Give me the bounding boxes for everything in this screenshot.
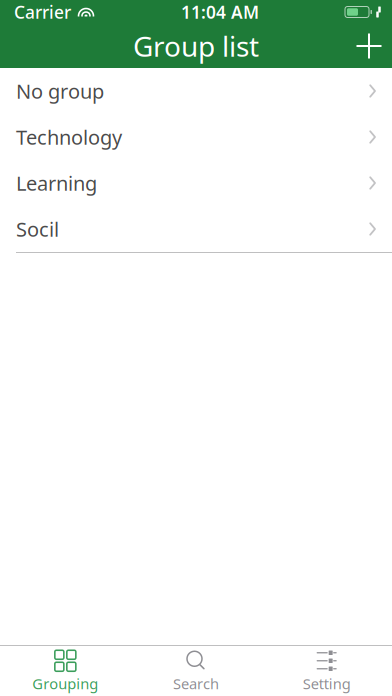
staticText: No group [16, 78, 104, 104]
staticText: Setting [303, 674, 351, 693]
button[interactable]: Learning [0, 160, 392, 206]
staticText: Group list [133, 27, 259, 65]
button[interactable]: Search [131, 646, 261, 696]
staticText: Search [173, 674, 219, 693]
staticText: 11:04 AM [181, 0, 259, 23]
staticText: Learning [16, 170, 97, 196]
staticText: Carrier [14, 0, 71, 23]
button[interactable]: Technology [0, 114, 392, 160]
staticText: Socil [16, 216, 59, 242]
button[interactable]: No group [0, 68, 392, 114]
button[interactable]: Setting [261, 646, 392, 696]
button[interactable]: Grouping [0, 646, 131, 696]
staticText: Technology [16, 124, 122, 150]
button[interactable]: Socil [0, 206, 392, 252]
button[interactable]: Add group [346, 25, 392, 67]
staticText: Grouping [32, 674, 98, 693]
